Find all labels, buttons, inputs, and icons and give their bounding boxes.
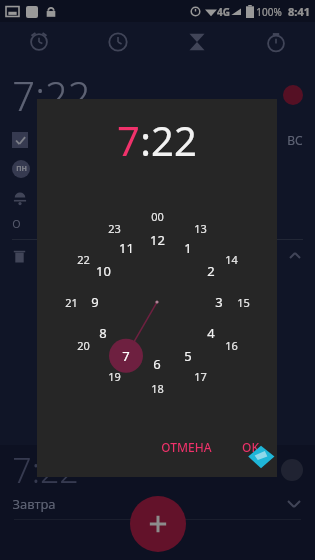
staticText: 00 [151,209,164,224]
staticText: 5 [184,347,192,365]
staticText: ПН [16,164,27,174]
staticText: 8 [99,324,107,342]
staticText: : [140,113,151,167]
button[interactable]: Clock [78,22,157,62]
staticText: OK [242,439,259,455]
staticText: 22 [151,113,197,167]
staticText: ВС [287,132,303,148]
button[interactable]: OK [234,433,267,461]
button[interactable]: Stopwatch [236,22,315,62]
button[interactable]: Alarm [0,22,78,62]
staticText: 100% [256,5,282,19]
staticText: 4 [207,324,215,342]
button[interactable]: Toggle [283,85,303,105]
staticText: 6 [153,355,161,373]
button[interactable]: Add alarm [130,496,186,552]
staticText: 2 [207,262,215,280]
staticText: О [12,216,21,231]
staticText: ОТМЕНА [161,439,212,455]
staticText: 14 [225,252,238,267]
staticText: 18 [151,381,164,396]
staticText: Завтра [12,495,56,513]
button[interactable]: Timer [157,22,236,62]
button[interactable]: Toggle alarm [281,459,303,481]
staticText: 21 [65,295,78,310]
staticText: 16 [225,338,238,353]
staticText: 3 [215,293,223,311]
staticText: 22 [77,252,90,267]
staticText: 17 [194,369,207,384]
staticText: 7:22 [12,447,79,493]
staticText: 11 [119,239,134,257]
staticText: 23 [108,221,121,236]
staticText: 20 [77,338,90,353]
staticText: 7 [117,113,140,167]
staticText: 15 [237,295,250,310]
staticText: 13 [194,221,207,236]
staticText: 19 [108,369,121,384]
staticText: 7 [122,347,130,365]
button[interactable]: Expand [285,495,303,513]
staticText: 12 [150,231,165,249]
staticText: 1 [184,239,192,257]
staticText: 8:41 [288,4,310,19]
staticText: 9 [91,293,99,311]
staticText: 4G [217,5,230,19]
button[interactable]: ОТМЕНА [153,433,220,461]
staticText: 7:22 [12,68,91,122]
staticText: 10 [96,262,111,280]
